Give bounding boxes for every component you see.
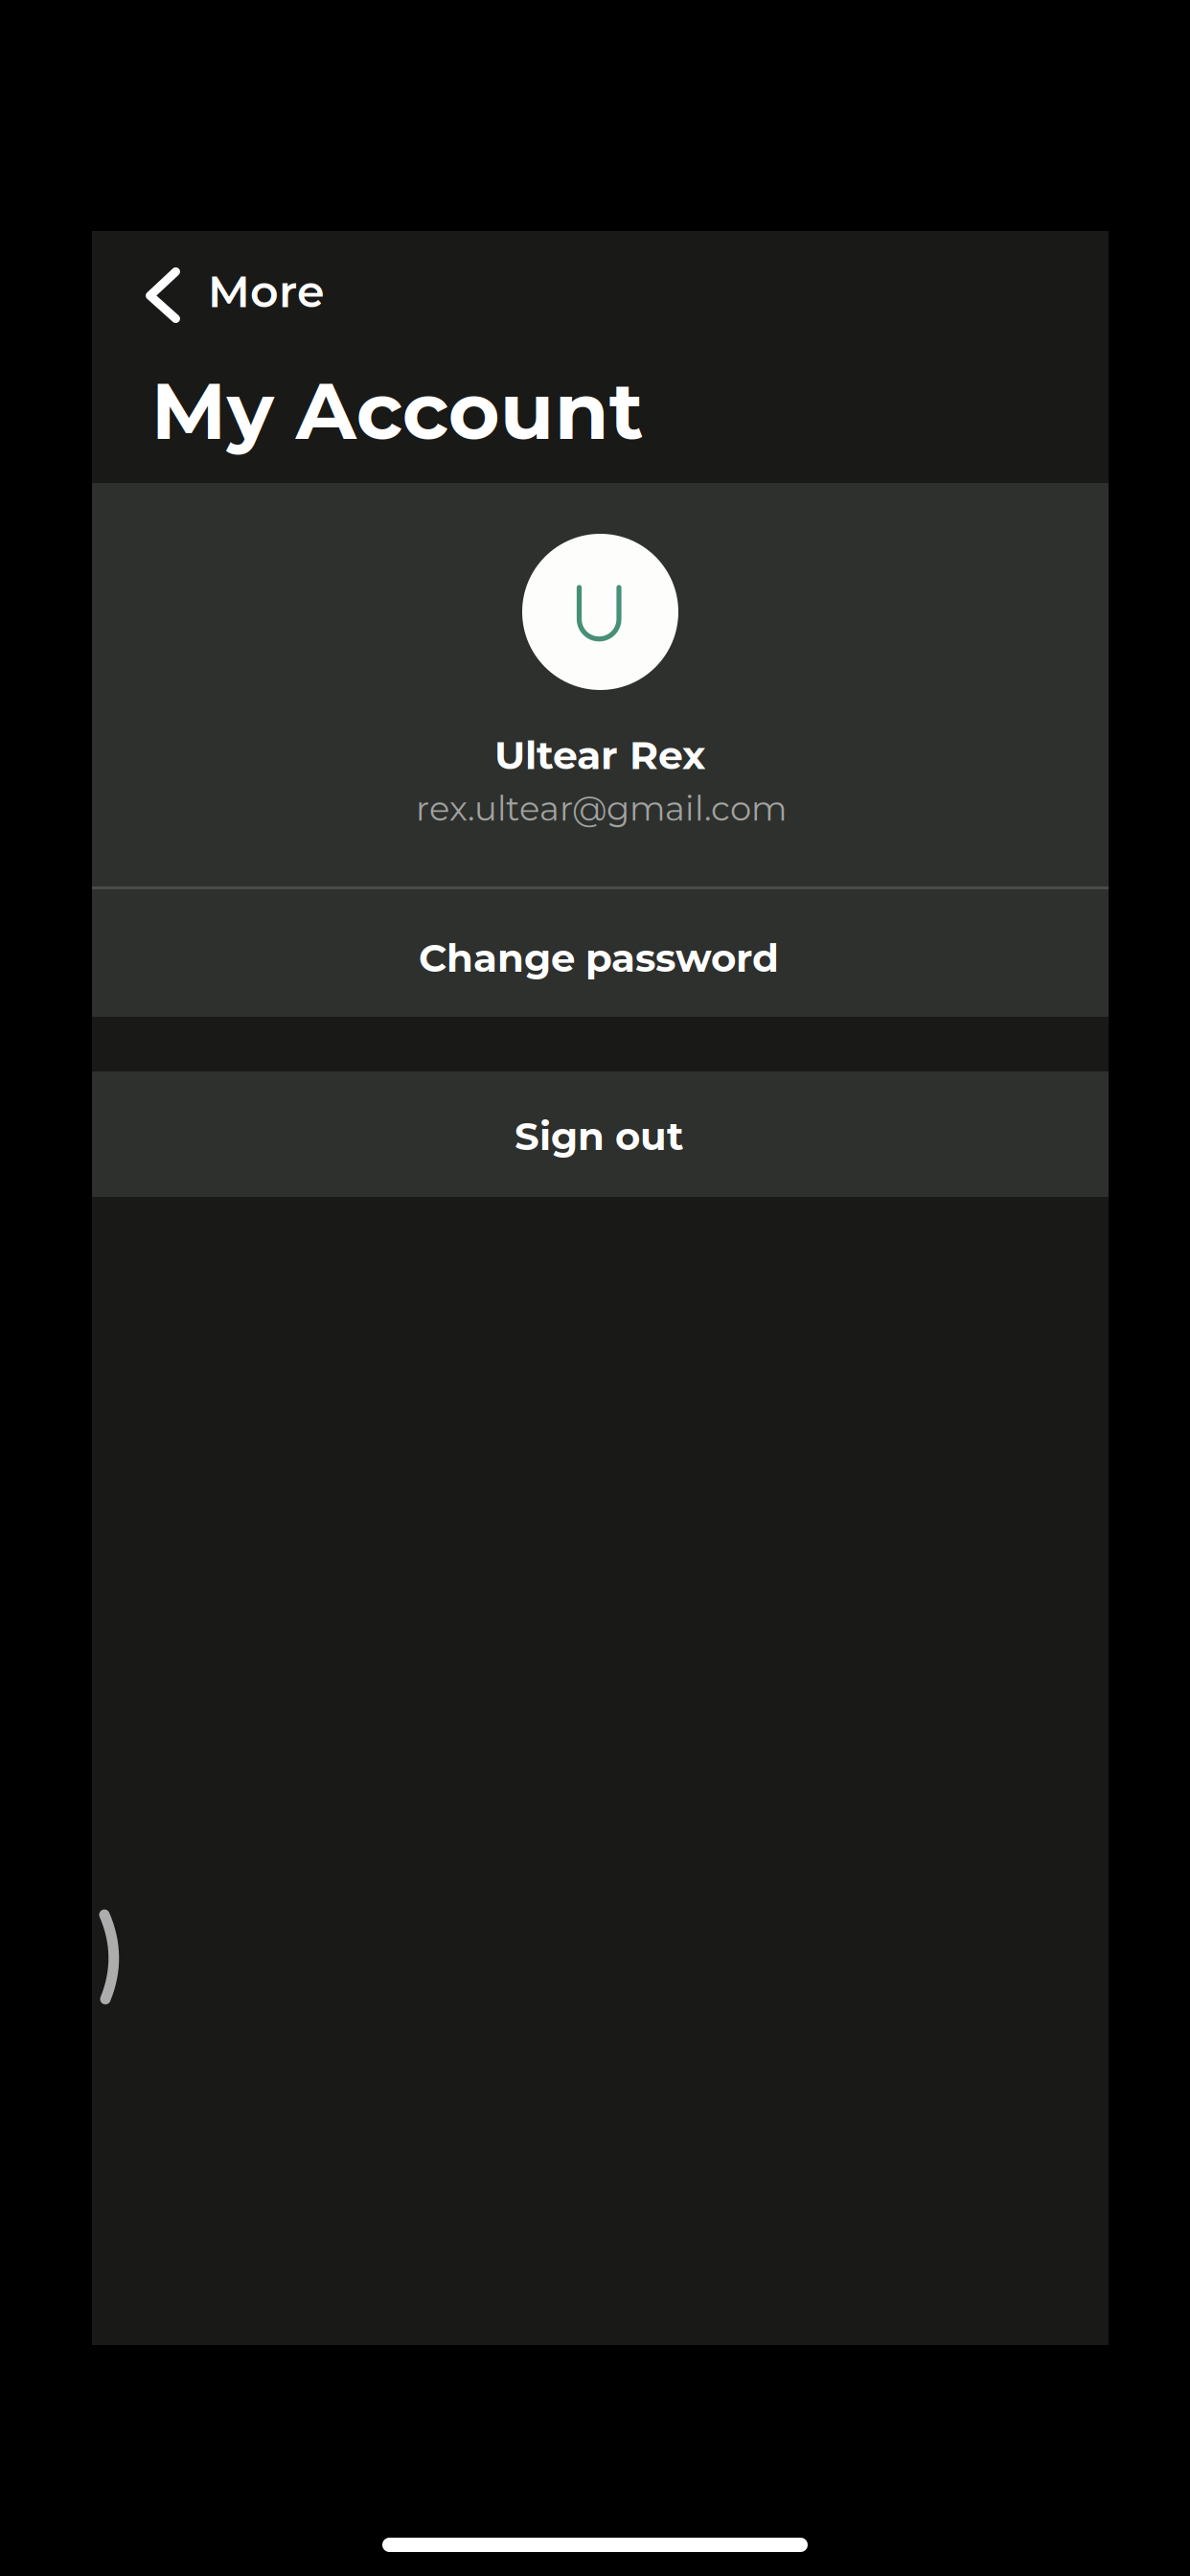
staticText: My Account — [151, 363, 644, 459]
staticText: Ultear Rex — [494, 731, 705, 779]
staticText: Change password — [419, 934, 779, 981]
staticText: Sign out — [515, 1113, 683, 1160]
staticText: rex.ultear@gmail.com — [416, 788, 787, 829]
button[interactable]: Back to More — [123, 245, 404, 345]
button[interactable]: Change password — [92, 888, 1109, 1017]
staticText: More — [208, 264, 325, 318]
button[interactable]: Sign out — [92, 1071, 1109, 1197]
